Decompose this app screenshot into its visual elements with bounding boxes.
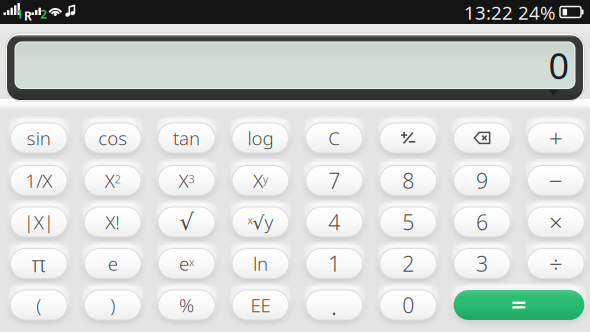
staticText: 1 xyxy=(16,6,23,22)
staticText: 8 xyxy=(402,166,414,195)
button[interactable]: |X| xyxy=(10,207,67,237)
staticText: 1/X xyxy=(25,168,52,193)
button[interactable]: ex xyxy=(158,248,215,278)
button[interactable]: 9 xyxy=(454,165,510,195)
staticText: 9 xyxy=(476,166,488,195)
button[interactable]: 3 xyxy=(454,248,510,278)
button[interactable]: 5 xyxy=(380,207,437,237)
button[interactable]: ln xyxy=(232,248,289,278)
staticText: × xyxy=(549,206,563,238)
staticText: ) xyxy=(110,293,115,317)
staticText: + xyxy=(549,122,563,154)
staticText: sin xyxy=(27,126,51,150)
button[interactable]: × xyxy=(527,207,584,237)
button[interactable]: C xyxy=(306,123,363,153)
staticText: log xyxy=(247,126,273,150)
button[interactable]: π xyxy=(10,248,67,278)
button[interactable]: log xyxy=(232,123,289,153)
button[interactable]: √ xyxy=(158,207,215,237)
button[interactable]: . xyxy=(306,290,363,320)
staticText: 4 xyxy=(328,208,340,236)
staticText: EE xyxy=(250,293,270,317)
button[interactable]: cos xyxy=(84,123,141,153)
staticText: 0 xyxy=(402,291,414,319)
staticText: % xyxy=(179,293,194,317)
button[interactable]: 7 xyxy=(306,165,363,195)
button[interactable]: x√y xyxy=(232,207,289,237)
staticText: tan xyxy=(173,126,200,150)
staticText: 5 xyxy=(402,208,414,236)
staticText: 6 xyxy=(476,208,488,236)
staticText: X2 xyxy=(105,168,121,193)
staticText: 0 xyxy=(548,41,569,89)
button[interactable]: Backspace xyxy=(454,123,510,153)
staticText: R xyxy=(24,8,32,24)
button[interactable]: X! xyxy=(84,207,141,237)
button[interactable]: 0 xyxy=(380,290,437,320)
staticText: ÷ xyxy=(549,248,563,279)
button[interactable]: ) xyxy=(84,290,141,320)
staticText: √ xyxy=(179,209,193,235)
button[interactable]: X3 xyxy=(158,165,215,195)
staticText: C xyxy=(328,126,340,150)
staticText: π xyxy=(32,248,46,278)
staticText: X3 xyxy=(178,168,194,193)
staticText: Xy xyxy=(253,168,268,193)
button[interactable]: 8 xyxy=(380,165,437,195)
button[interactable]: tan xyxy=(158,123,215,153)
staticText: 2 xyxy=(40,6,47,22)
button[interactable]: Equals xyxy=(454,290,584,320)
staticText: |X| xyxy=(24,210,54,234)
button[interactable]: 1 xyxy=(306,248,363,278)
button[interactable]: − xyxy=(527,165,584,195)
button[interactable]: EE xyxy=(232,290,289,320)
staticText: ( xyxy=(36,293,41,317)
staticText: x√y xyxy=(247,210,273,234)
button[interactable]: 6 xyxy=(454,207,510,237)
staticText: ex xyxy=(179,251,194,276)
button[interactable]: Plus minus xyxy=(380,123,437,153)
staticText: 1 xyxy=(328,249,340,278)
button[interactable]: ÷ xyxy=(527,248,584,278)
button[interactable]: Xy xyxy=(232,165,289,195)
staticText: 13:22 24% xyxy=(464,0,556,25)
staticText: 3 xyxy=(476,249,488,278)
button[interactable]: sin xyxy=(10,123,67,153)
button[interactable]: + xyxy=(527,123,584,153)
staticText: . xyxy=(331,287,338,323)
staticText: e xyxy=(108,251,118,276)
staticText: 7 xyxy=(328,166,340,195)
button[interactable]: 1/X xyxy=(10,165,67,195)
staticText: − xyxy=(549,165,563,196)
button[interactable]: X2 xyxy=(84,165,141,195)
staticText: X! xyxy=(105,210,120,234)
button[interactable]: ( xyxy=(10,290,67,320)
staticText: 2 xyxy=(402,249,414,278)
button[interactable]: e xyxy=(84,248,141,278)
staticText: ln xyxy=(253,251,268,276)
button[interactable]: 2 xyxy=(380,248,437,278)
staticText: cos xyxy=(98,126,127,150)
button[interactable]: % xyxy=(158,290,215,320)
button[interactable]: 4 xyxy=(306,207,363,237)
